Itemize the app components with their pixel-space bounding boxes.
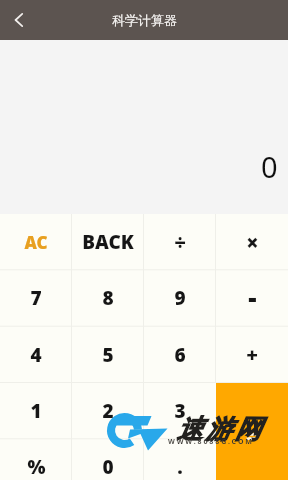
staticText: 1 — [30, 398, 42, 424]
staticText: % — [27, 454, 46, 480]
button[interactable]: 6 — [144, 327, 216, 383]
staticText: 9 — [174, 285, 186, 311]
staticText: 3 — [174, 398, 186, 424]
button[interactable]: 9 — [144, 270, 216, 326]
button[interactable]: 1 — [0, 383, 72, 439]
button[interactable]: + — [216, 327, 288, 383]
button[interactable]: 0 — [72, 439, 144, 480]
staticText: - — [248, 279, 257, 314]
staticText: 速游网 — [175, 413, 262, 446]
button[interactable]: 8 — [72, 270, 144, 326]
button[interactable]: 7 — [0, 270, 72, 326]
button[interactable]: ÷ — [144, 214, 216, 270]
staticText: 0 — [102, 454, 114, 480]
button[interactable]: 3 — [144, 383, 216, 439]
button[interactable]: 5 — [72, 327, 144, 383]
staticText: AC — [24, 231, 48, 254]
staticText: 5 — [102, 342, 114, 368]
button[interactable]: 2 — [72, 383, 144, 439]
button[interactable]: . — [144, 439, 216, 480]
staticText: WWW.8688G.COM — [168, 437, 254, 447]
staticText: 7 — [30, 285, 42, 311]
staticText: = — [246, 423, 258, 450]
staticText: ÷ — [174, 229, 186, 256]
staticText: + — [246, 341, 258, 368]
staticText: 0 — [261, 147, 278, 186]
staticText: 8 — [102, 285, 114, 311]
button[interactable] — [216, 383, 288, 439]
button[interactable]: BACK — [72, 214, 144, 270]
staticText: 2 — [102, 398, 114, 424]
button[interactable]: 4 — [0, 327, 72, 383]
button[interactable]: × — [216, 214, 288, 270]
button[interactable]: Back — [0, 1, 38, 39]
button[interactable] — [216, 439, 288, 480]
staticText: × — [246, 227, 259, 257]
staticText: BACK — [82, 229, 134, 255]
button[interactable]: AC — [0, 214, 72, 270]
staticText: 6 — [174, 342, 186, 368]
button[interactable]: - — [216, 270, 288, 326]
button[interactable]: % — [0, 439, 72, 480]
staticText: . — [177, 454, 183, 480]
staticText: 科学计算器 — [112, 12, 177, 28]
staticText: 4 — [30, 342, 42, 368]
button[interactable]: = — [216, 383, 288, 480]
